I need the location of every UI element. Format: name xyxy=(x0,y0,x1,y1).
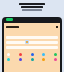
button[interactable]: colour xyxy=(54,53,57,56)
button[interactable]: colour xyxy=(54,58,57,61)
button[interactable]: colour xyxy=(31,58,34,61)
button[interactable]: colour xyxy=(19,58,22,61)
button[interactable]: colour xyxy=(7,58,10,61)
button[interactable]: colour xyxy=(7,53,10,56)
button[interactable]: colour xyxy=(19,53,22,56)
button[interactable]: app icon xyxy=(25,40,29,44)
button[interactable] xyxy=(6,41,58,44)
button[interactable]: colour xyxy=(31,53,34,56)
button[interactable]: colour xyxy=(42,58,45,61)
button[interactable]: colour xyxy=(42,53,45,56)
